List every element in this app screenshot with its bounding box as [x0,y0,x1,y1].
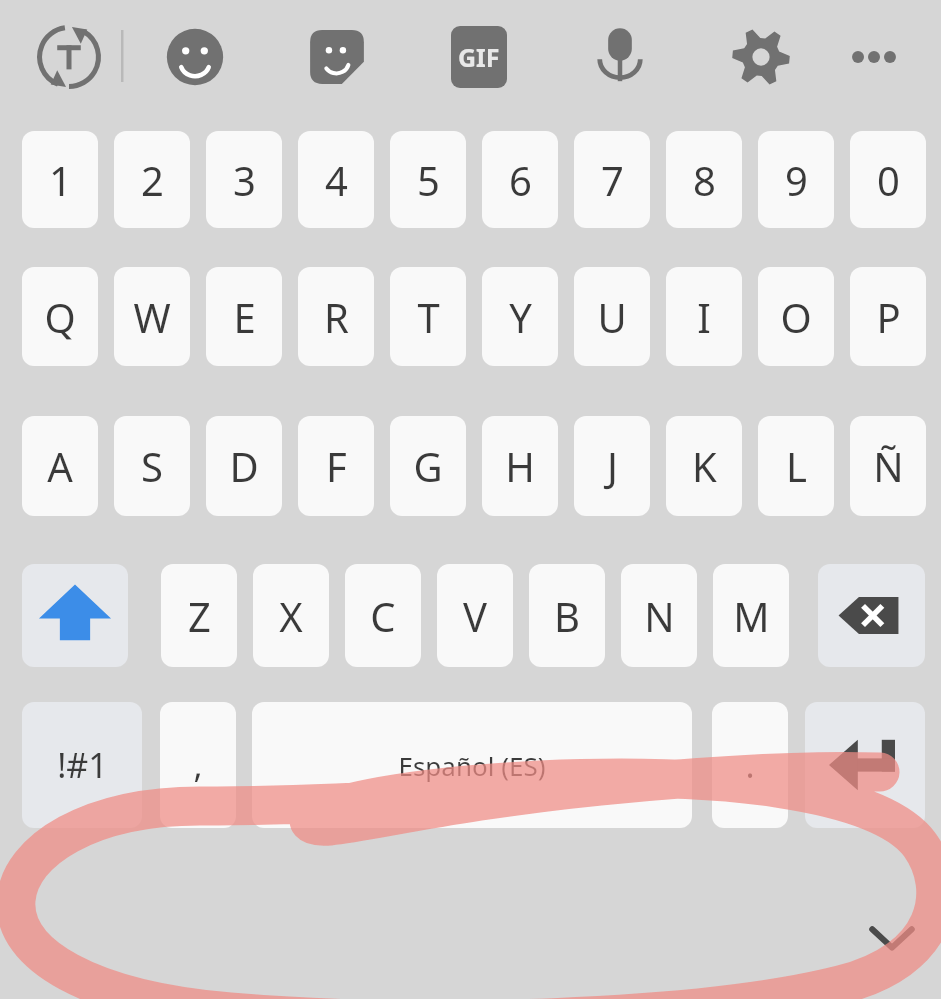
button[interactable]: Enter [805,702,925,828]
staticText: C [370,589,396,643]
button[interactable]: T [390,267,466,366]
button[interactable]: More options [842,25,906,89]
staticText: 0 [877,153,900,207]
staticText: J [607,439,618,493]
button[interactable]: U [574,267,650,366]
staticText: 2 [141,153,164,207]
staticText: F [326,439,347,493]
button[interactable]: 7 [574,131,650,228]
button[interactable]: Emoji [163,25,227,89]
button[interactable]: C [345,564,421,667]
button[interactable]: GIF [447,25,511,89]
button[interactable]: Backspace [818,564,925,667]
staticText: I [697,290,711,344]
button[interactable]: !#1 [22,702,142,828]
staticText: S [141,439,163,493]
button[interactable]: Stickers [305,25,369,89]
button[interactable]: 9 [758,131,834,228]
button[interactable]: 8 [666,131,742,228]
staticText: 7 [601,153,624,207]
staticText: K [692,439,717,493]
button[interactable]: Z [161,564,237,667]
staticText: P [876,290,901,344]
button[interactable]: Ñ [850,416,926,516]
button[interactable]: I [666,267,742,366]
button[interactable]: Q [22,267,98,366]
button[interactable]: G [390,416,466,516]
staticText: 9 [785,153,808,207]
staticText: M [733,589,770,643]
button[interactable]: K [666,416,742,516]
staticText: !#1 [57,742,108,788]
button[interactable]: 5 [390,131,466,228]
button[interactable]: 2 [114,131,190,228]
staticText: N [644,589,675,643]
button[interactable]: S [114,416,190,516]
button[interactable]: 4 [298,131,374,228]
button[interactable]: Shift [22,564,128,667]
staticText: Ñ [873,439,904,493]
staticText: . [745,742,755,788]
staticText: O [780,290,812,344]
button[interactable]: L [758,416,834,516]
button[interactable]: 1 [22,131,98,228]
button[interactable]: 6 [482,131,558,228]
staticText: Y [509,290,532,344]
staticText: X [279,589,303,643]
button[interactable]: V [437,564,513,667]
button[interactable]: Y [482,267,558,366]
staticText: 4 [325,153,348,207]
staticText: 5 [417,153,440,207]
staticText: E [233,290,256,344]
staticText: , [193,742,203,788]
button[interactable]: B [529,564,605,667]
button[interactable]: J [574,416,650,516]
button[interactable]: Español (ES) [252,702,692,828]
button[interactable]: , [160,702,236,828]
staticText: R [324,290,349,344]
button[interactable]: 3 [206,131,282,228]
button[interactable]: R [298,267,374,366]
button[interactable]: N [621,564,697,667]
staticText: A [47,439,73,493]
staticText: 1 [49,153,72,207]
staticText: G [413,439,443,493]
button[interactable]: E [206,267,282,366]
staticText: Z [188,589,211,643]
button[interactable]: Translate [37,25,101,89]
staticText: D [229,439,259,493]
button[interactable]: X [253,564,329,667]
button[interactable]: Hide keyboard [866,916,918,960]
button[interactable]: F [298,416,374,516]
button[interactable]: P [850,267,926,366]
button[interactable]: Settings [729,25,793,89]
staticText: GIF [458,40,500,74]
button[interactable]: 0 [850,131,926,228]
staticText: U [597,290,627,344]
staticText: 6 [509,153,532,207]
staticText: T [417,290,440,344]
staticText: Español (ES) [398,748,546,783]
button[interactable]: H [482,416,558,516]
staticText: V [463,589,487,643]
staticText: B [554,589,580,643]
button[interactable]: O [758,267,834,366]
button[interactable]: W [114,267,190,366]
button[interactable]: A [22,416,98,516]
staticText: L [786,439,807,493]
button[interactable]: M [713,564,789,667]
button[interactable]: Voice input [588,25,652,89]
staticText: Q [44,290,76,344]
button[interactable]: D [206,416,282,516]
staticText: H [505,439,535,493]
staticText: 3 [233,153,256,207]
staticText: 8 [693,153,716,207]
staticText: W [133,290,171,344]
button[interactable]: . [712,702,788,828]
